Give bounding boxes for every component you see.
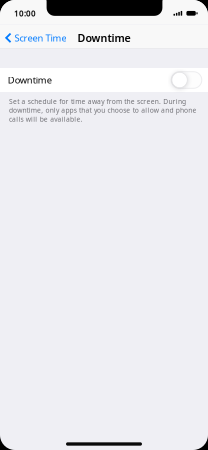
staticText: Downtime: [77, 31, 130, 45]
staticText: Screen Time: [14, 32, 66, 44]
button[interactable]: Screen Time: [0, 28, 66, 48]
staticText: 10:00: [14, 8, 36, 19]
staticText: Set a schedule for time away from the sc…: [9, 97, 196, 124]
staticText: Downtime: [8, 74, 52, 86]
button[interactable]: Downtime: [0, 68, 208, 92]
